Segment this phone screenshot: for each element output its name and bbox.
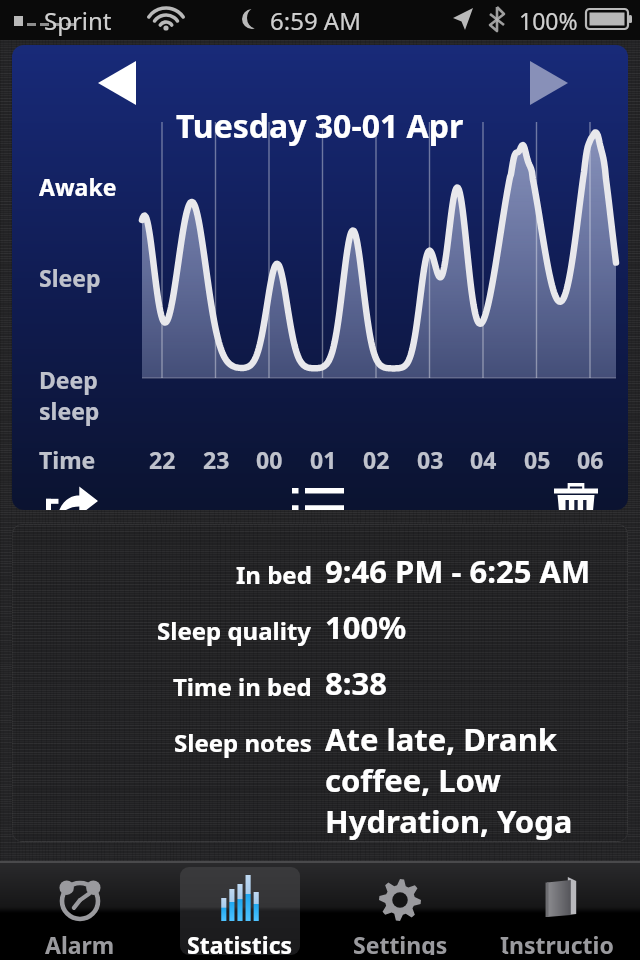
- staticText: 23: [203, 444, 230, 475]
- button[interactable]: Share: [34, 477, 110, 510]
- staticText: 00: [256, 444, 283, 475]
- staticText: Sleep: [39, 262, 101, 293]
- button[interactable]: Delete: [538, 477, 614, 510]
- staticText: Instructions: [500, 929, 620, 955]
- staticText: Sleep quality: [157, 614, 312, 647]
- button[interactable]: Settings: [320, 862, 480, 960]
- staticText: 04: [470, 444, 497, 475]
- staticText: In bed: [236, 558, 312, 591]
- staticText: 100%: [325, 606, 407, 648]
- button[interactable]: Statistics: [160, 862, 320, 960]
- staticText: Sprint: [44, 4, 112, 37]
- button[interactable]: List: [280, 477, 356, 510]
- staticText: 05: [524, 444, 551, 475]
- staticText: Statistics: [187, 929, 293, 955]
- staticText: Ate late, Drank coffee, Low Hydration, Y…: [325, 718, 625, 842]
- staticText: Time in bed: [173, 670, 312, 703]
- staticText: 03: [417, 444, 444, 475]
- staticText: Deep: [39, 364, 98, 395]
- staticText: 06: [577, 444, 604, 475]
- button[interactable]: Instructions: [480, 862, 640, 960]
- staticText: 02: [363, 444, 390, 475]
- button[interactable]: Next day: [514, 102, 578, 154]
- staticText: Sleep notes: [174, 726, 312, 759]
- button[interactable]: Previous day: [90, 102, 154, 154]
- staticText: 9:46 PM - 6:25 AM: [325, 550, 591, 592]
- staticText: 8:38: [325, 662, 387, 704]
- staticText: Settings: [353, 929, 448, 955]
- staticText: 22: [149, 444, 176, 475]
- staticText: sleep: [39, 395, 100, 426]
- staticText: Alarm: [45, 929, 115, 955]
- staticText: Tuesday 30-01 Apr: [176, 104, 464, 148]
- staticText: 6:59 AM: [270, 4, 361, 37]
- staticText: 01: [310, 444, 337, 475]
- staticText: 100%: [519, 5, 578, 36]
- button[interactable]: Alarm: [0, 862, 160, 960]
- staticText: Time: [39, 444, 96, 475]
- staticText: Awake: [39, 171, 117, 202]
